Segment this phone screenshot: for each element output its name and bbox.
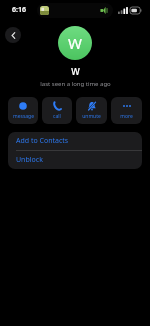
- staticText: message: [13, 113, 34, 120]
- staticText: call: [53, 113, 61, 120]
- button[interactable]: unmute: [76, 97, 107, 124]
- staticText: 6:16: [12, 5, 26, 15]
- button[interactable]: Add to Contacts: [8, 132, 142, 150]
- staticText: unmute: [82, 113, 101, 120]
- button[interactable]: message: [8, 97, 38, 124]
- staticText: W: [68, 33, 82, 53]
- button[interactable]: Back: [5, 27, 21, 43]
- staticText: more: [120, 113, 133, 120]
- staticText: Add to Contacts: [16, 136, 69, 146]
- staticText: last seen a long time ago: [40, 80, 111, 88]
- button[interactable]: Unblock: [8, 151, 142, 169]
- button[interactable]: call: [42, 97, 72, 124]
- staticText: Unblock: [16, 155, 43, 165]
- button[interactable]: more: [111, 97, 142, 124]
- button[interactable]: Profile photo: [58, 26, 92, 60]
- staticText: W: [71, 65, 80, 77]
